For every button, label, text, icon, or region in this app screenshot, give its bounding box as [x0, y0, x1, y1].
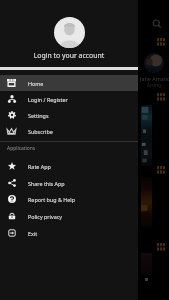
button[interactable]: Subscribe: [0, 123, 138, 139]
button[interactable]: Exit: [0, 225, 138, 241]
staticText: Login / Register: [28, 96, 68, 103]
button[interactable]: [141, 105, 152, 166]
button[interactable]: [141, 253, 152, 275]
button[interactable]: Grid view: [157, 93, 165, 101]
staticText: Jane Amanda: [140, 75, 169, 82]
staticText: Home: [28, 80, 44, 87]
button[interactable]: Search: [152, 19, 162, 29]
staticText: Rate App: [28, 163, 51, 170]
staticText: Share this App: [28, 180, 65, 187]
button[interactable]: Rate App: [0, 158, 138, 174]
staticText: Report bug & Help: [28, 196, 75, 203]
button[interactable]: [141, 177, 152, 227]
staticText: Exit: [28, 230, 38, 237]
staticText: Settings: [28, 112, 49, 119]
button[interactable]: [144, 53, 164, 73]
button[interactable]: Grid view: [157, 38, 165, 46]
staticText: Applications: [7, 145, 36, 152]
button[interactable]: Share this App: [0, 175, 138, 191]
staticText: Acting: [147, 82, 162, 89]
button[interactable]: Settings: [0, 107, 138, 123]
button[interactable]: Grid view: [157, 243, 165, 251]
staticText: Policy privacy: [28, 213, 63, 220]
staticText: Subscribe: [28, 128, 53, 135]
button[interactable]: Policy privacy: [0, 208, 138, 224]
button[interactable]: Grid view: [157, 166, 165, 174]
button[interactable]: Login / Register: [0, 91, 138, 107]
button[interactable]: Login to your account: [0, 51, 138, 60]
button[interactable]: Home: [0, 75, 138, 91]
button[interactable]: Report bug & Help: [0, 191, 138, 207]
button[interactable]: Profile photo: [54, 17, 85, 48]
